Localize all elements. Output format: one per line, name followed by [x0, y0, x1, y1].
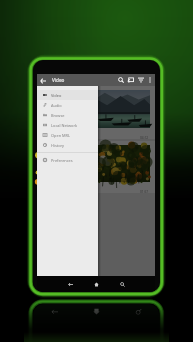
staticText: Ha Long Bay Vietnam.mp4: [42, 130, 90, 135]
button[interactable]: Search: [116, 75, 126, 85]
button[interactable]: Open MRL: [37, 130, 98, 140]
staticText: Local Network: [51, 123, 78, 128]
staticText: 01:57: [140, 190, 149, 193]
button[interactable]: Local Network: [37, 120, 98, 130]
button[interactable]: Search: [109, 276, 135, 292]
button[interactable]: Back: [37, 75, 48, 86]
staticText: Video: [52, 77, 65, 83]
staticText: History: [51, 143, 65, 148]
button[interactable]: Browse: [37, 110, 98, 120]
staticText: Video: [51, 93, 62, 98]
button[interactable]: Sort: [136, 75, 146, 85]
staticText: Open MRL: [51, 133, 71, 138]
staticText: Preferences: [51, 158, 73, 163]
button[interactable]: More options: [146, 76, 154, 84]
button[interactable]: Audio: [37, 100, 98, 110]
button[interactable]: History: [37, 140, 98, 150]
button[interactable]: Home: [83, 276, 109, 292]
staticText: Browse: [51, 113, 65, 118]
button[interactable]: Preferences: [37, 155, 98, 165]
button[interactable]: Cast: [126, 75, 136, 85]
button[interactable]: Back: [57, 276, 83, 292]
button[interactable]: Video: [37, 90, 98, 100]
staticText: Audio: [51, 103, 62, 108]
staticText: 04:12: [140, 136, 149, 139]
